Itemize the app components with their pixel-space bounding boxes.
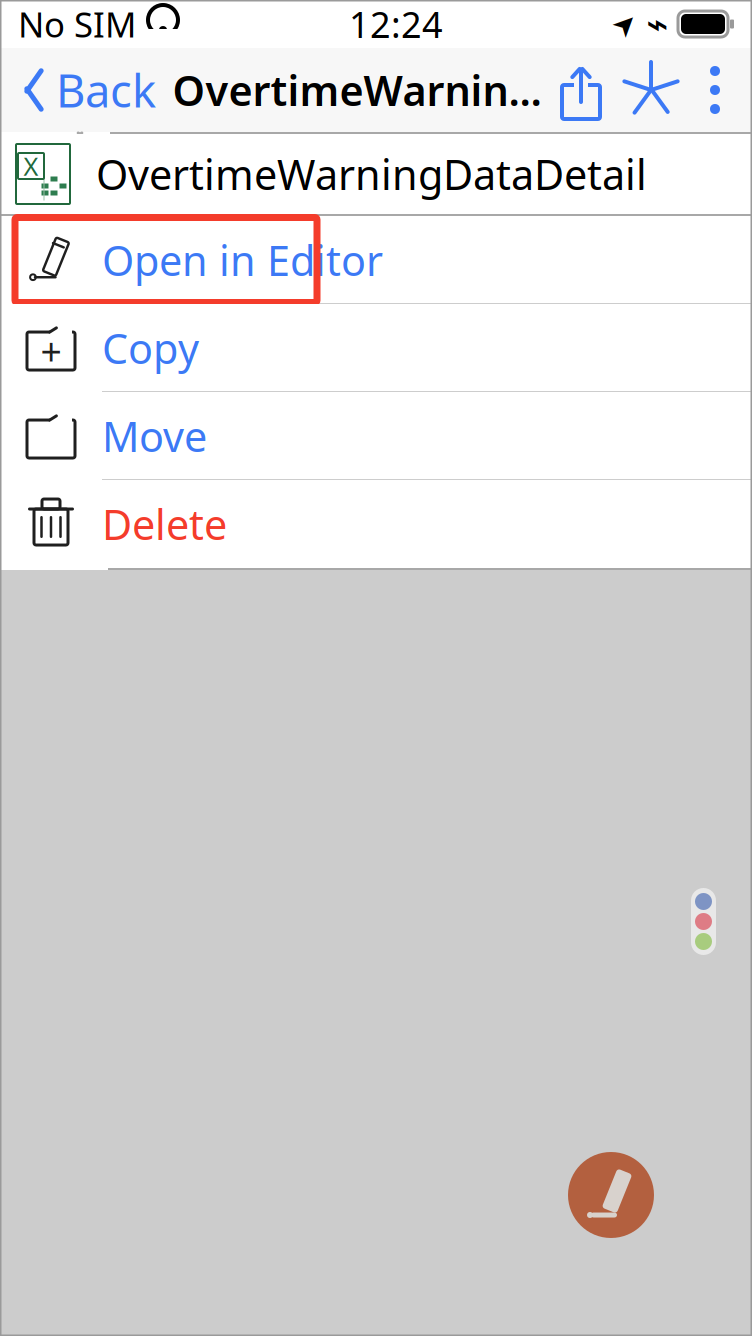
button[interactable]: New note: [568, 1152, 654, 1238]
button[interactable]: Favorite: [604, 65, 676, 115]
staticText: ➤: [612, 7, 637, 41]
button[interactable]: Delete: [0, 480, 752, 568]
staticText: OvertimeWarningDataDetail: [96, 147, 647, 201]
staticText: +: [40, 326, 61, 376]
staticText: OvertimeWarnin...: [172, 63, 541, 117]
button[interactable]: Open in Editor: [0, 216, 752, 304]
staticText: Open in Editor: [102, 233, 383, 287]
staticText: Back: [56, 60, 156, 120]
staticText: ⌁: [646, 3, 668, 45]
button[interactable]: Move: [0, 392, 752, 480]
button[interactable]: Share: [558, 63, 604, 117]
staticText: Delete: [102, 497, 227, 551]
staticText: No SIM: [18, 1, 136, 47]
button[interactable]: +: [0, 304, 752, 392]
button[interactable]: Back: [0, 52, 156, 128]
staticText: Move: [102, 409, 207, 463]
staticText: Copy: [102, 321, 199, 375]
staticText: X: [23, 149, 38, 183]
button[interactable]: More options: [676, 63, 732, 117]
staticText: 12:24: [349, 0, 443, 48]
